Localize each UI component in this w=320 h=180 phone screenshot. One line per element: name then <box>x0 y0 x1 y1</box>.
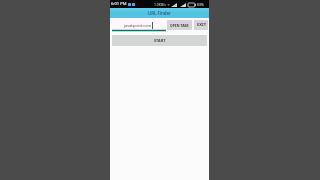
button[interactable]: EXIT <box>194 20 208 30</box>
staticText: URL Finder <box>148 10 171 16</box>
staticText: EXIT <box>197 22 206 28</box>
staticText: START <box>154 38 166 43</box>
staticText: 6:01 PM <box>111 1 127 7</box>
button[interactable]: OPEN TABS <box>167 20 192 30</box>
other: Notification <box>128 3 131 6</box>
staticText: javatpoint.com <box>124 23 152 28</box>
staticText: 53% <box>197 2 204 7</box>
staticText: OPEN TABS <box>170 23 189 28</box>
button[interactable]: javatpoint.com <box>110 18 166 31</box>
other: Signal strength SIM 1 <box>171 3 177 7</box>
other: Battery 53 percent <box>188 3 196 7</box>
button[interactable]: START <box>112 35 207 46</box>
other: Notification <box>132 3 135 6</box>
other: Signal strength SIM 2 <box>180 3 186 7</box>
staticText: 1.0KB/s <box>154 2 166 7</box>
